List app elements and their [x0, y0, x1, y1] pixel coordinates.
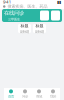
- button[interactable]: 我的: [46, 88, 60, 100]
- staticText: 我的: [50, 94, 56, 99]
- button[interactable]: 首页: [4, 88, 18, 100]
- button[interactable]: 商城: [32, 88, 46, 100]
- staticText: 9:41: [3, 0, 11, 4]
- staticText: 标题: [20, 23, 28, 28]
- staticText: 问诊: [22, 94, 28, 99]
- staticText: ▮▮: [57, 0, 61, 4]
- staticText: 标题: [35, 23, 43, 28]
- staticText: 三甲医生: [8, 17, 20, 21]
- staticText: 搜索疾病、医生、药品: [7, 4, 47, 9]
- staticText: 在线问诊: [4, 9, 24, 16]
- staticText: 商城: [36, 94, 42, 99]
- staticText: 首页: [8, 94, 14, 99]
- staticText: 副标题: [20, 29, 29, 34]
- button[interactable]: 问诊: [18, 88, 32, 100]
- staticText: 副标题: [35, 29, 44, 34]
